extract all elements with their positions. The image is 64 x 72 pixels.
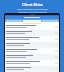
staticText: See all screen flavors of the UI kit bun… [17,8,48,10]
button[interactable]: Open [5,54,59,60]
button[interactable]: Open [5,48,59,54]
button[interactable]: Open [5,60,59,66]
staticText: Client Skins [22,2,43,7]
button[interactable]: Open [5,30,59,36]
button[interactable]: Open [5,42,59,48]
button[interactable]: Open [5,24,59,30]
button[interactable]: Open [5,36,59,42]
button[interactable]: Open [5,66,59,72]
button[interactable]: designed for every screen in your app [18,11,47,13]
